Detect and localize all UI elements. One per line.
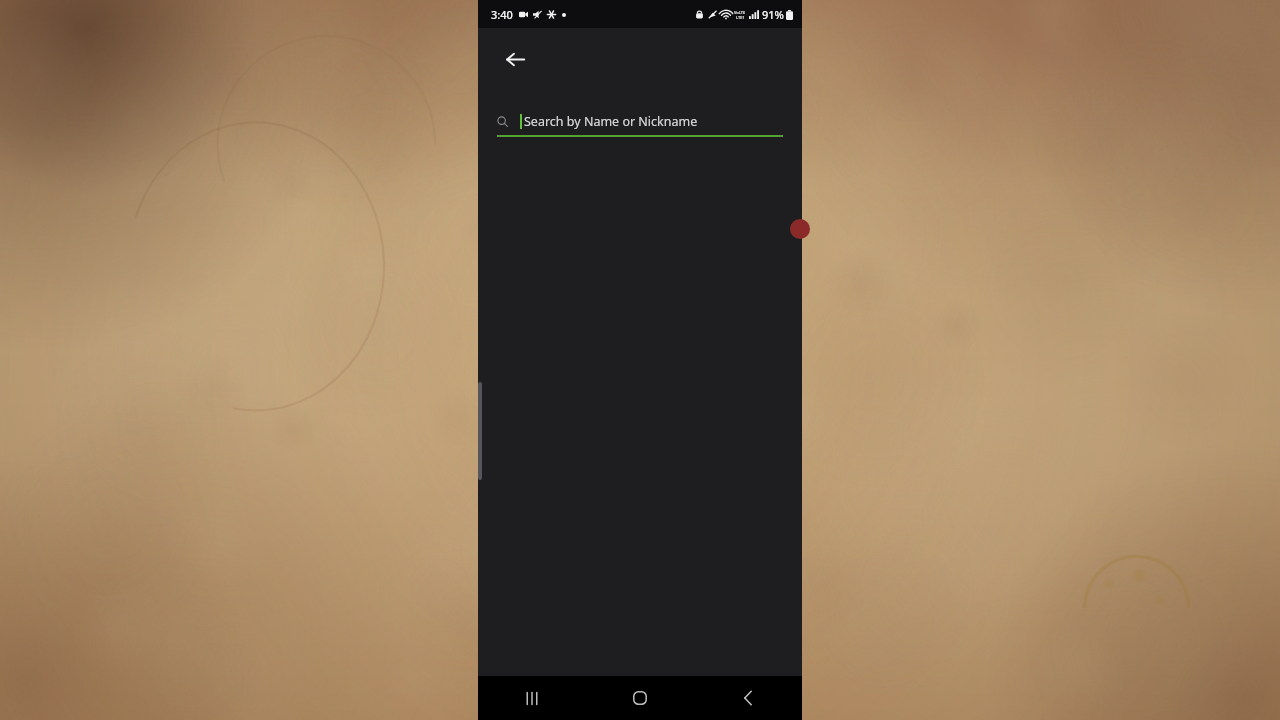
button[interactable]: Home xyxy=(586,676,694,720)
staticText: VoLTE xyxy=(734,10,746,15)
button[interactable]: Back xyxy=(496,40,534,78)
staticText: LTE1 xyxy=(736,15,745,20)
button[interactable]: Back xyxy=(694,676,802,720)
staticText: 91% xyxy=(762,7,784,22)
button[interactable]: Recent apps xyxy=(478,676,586,720)
staticText: 3:40 xyxy=(491,7,513,22)
button[interactable]: Search by Name or Nickname xyxy=(497,110,783,137)
staticText: Search by Name or Nickname xyxy=(524,113,698,130)
